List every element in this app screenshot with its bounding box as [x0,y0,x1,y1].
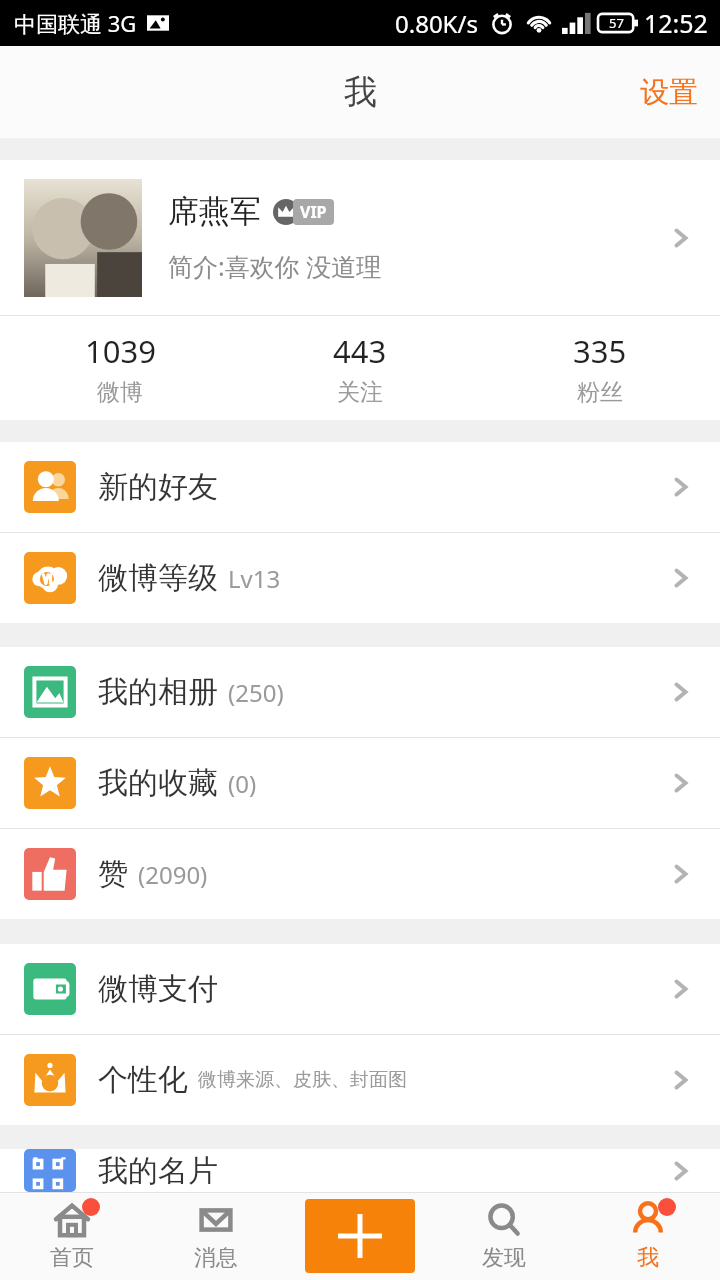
staticText: 我 [344,71,377,113]
button[interactable]: 新的好友 [0,442,720,532]
staticText: 席燕军 [168,192,261,231]
staticText: 首页 [50,1244,94,1272]
staticText: 我的名片 [98,1152,218,1190]
staticText: 12:52 [644,6,708,40]
other: 我的相册 [24,666,76,718]
staticText: 消息 [194,1244,238,1272]
staticText: 设置 [640,74,698,111]
staticText: 微博 [97,378,143,407]
button[interactable]: 335 [480,316,720,420]
staticText: (250) [228,676,284,709]
button[interactable]: 443 [240,316,480,420]
staticText: (2090) [138,858,208,891]
other: 新的好友 [24,461,76,513]
other: 个性化 [24,1054,76,1106]
staticText: 中国联通 3G [14,8,137,38]
staticText: 粉丝 [577,378,623,407]
other: 微博支付 [24,963,76,1015]
staticText: 简介:喜欢你 没道理 [168,249,382,283]
staticText: 我 [637,1244,659,1272]
staticText: (0) [228,767,257,800]
staticText: 个性化 [98,1061,188,1099]
other: 我的收藏 [24,757,76,809]
other: 我的名片 [24,1149,76,1192]
button[interactable]: 首页 [0,1192,144,1280]
button[interactable]: 1039 [0,316,240,420]
staticText: VIP [300,201,327,223]
staticText: 0.80K/s [395,7,478,40]
staticText: 新的好友 [98,468,218,506]
staticText: 我的收藏 [98,764,218,802]
button[interactable]: 发现 [432,1192,576,1280]
staticText: 1039 [85,330,156,372]
staticText: 微博支付 [98,970,218,1008]
other: 赞 [24,848,76,900]
staticText: 443 [333,330,387,372]
staticText: 微博来源、皮肤、封面图 [198,1068,407,1092]
button[interactable]: 消息 [144,1192,288,1280]
button[interactable]: Compose [305,1199,415,1273]
button[interactable]: 个性化 [0,1035,720,1125]
button[interactable]: 我的名片 [0,1149,720,1192]
button[interactable]: 我的相册 [0,647,720,737]
button[interactable]: 微博支付 [0,944,720,1034]
other: 微博等级 [24,552,76,604]
button[interactable]: 我 [576,1192,720,1280]
staticText: 57 [609,14,624,32]
button[interactable]: 赞 [0,829,720,919]
staticText: 微博等级 [98,559,218,597]
button[interactable]: 微博等级 [0,533,720,623]
button[interactable]: 我的收藏 [0,738,720,828]
button[interactable]: 设置 [618,56,720,129]
staticText: Lv13 [228,562,281,595]
staticText: 赞 [98,855,128,893]
staticText: 我的相册 [98,673,218,711]
staticText: 335 [573,330,627,372]
button[interactable]: 席燕军 [0,160,720,315]
staticText: 关注 [337,378,383,407]
staticText: 发现 [482,1244,526,1272]
